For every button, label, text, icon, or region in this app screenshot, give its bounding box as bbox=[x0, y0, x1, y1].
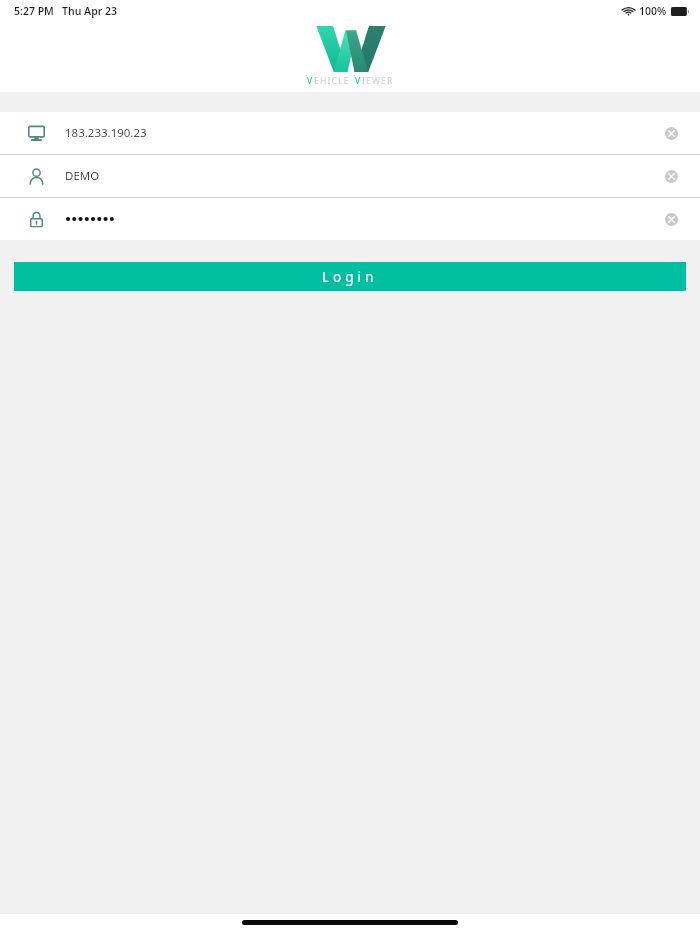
staticText: DEMO bbox=[65, 168, 100, 184]
button[interactable]: Clear text bbox=[0, 198, 700, 240]
button[interactable]: Clear text bbox=[660, 165, 682, 187]
button[interactable]: Login bbox=[14, 262, 686, 291]
button[interactable]: 183.233.190.23 bbox=[0, 112, 700, 154]
staticText: V bbox=[307, 75, 314, 87]
staticText: IEWER bbox=[362, 75, 394, 87]
staticText: 100% bbox=[639, 4, 667, 18]
staticText: V bbox=[355, 75, 362, 87]
button[interactable]: Clear text bbox=[660, 122, 682, 144]
staticText: Login bbox=[322, 268, 378, 286]
button[interactable]: DEMO bbox=[0, 155, 700, 197]
button[interactable]: Clear text bbox=[660, 208, 682, 230]
staticText: 5:27 PM bbox=[14, 4, 54, 18]
staticText: 183.233.190.23 bbox=[65, 125, 147, 141]
staticText: Thu Apr 23 bbox=[62, 4, 118, 18]
staticText: EHICLE bbox=[314, 75, 350, 87]
